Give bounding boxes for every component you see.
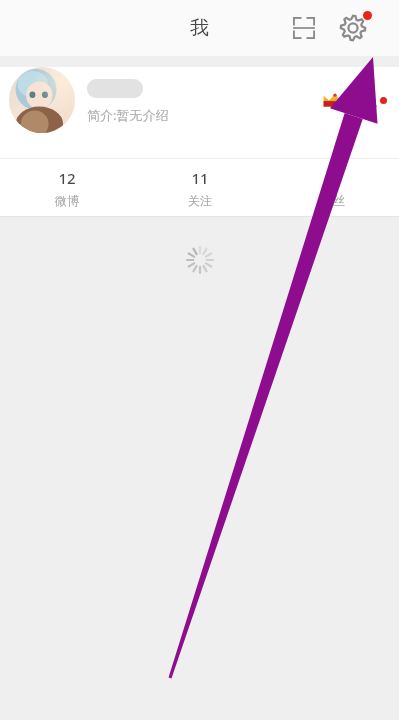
button[interactable]: 会员	[320, 89, 387, 111]
button[interactable]: 简介:暂无介绍	[0, 67, 399, 159]
staticText: 12	[58, 168, 76, 188]
staticText: 微博	[55, 193, 79, 208]
button[interactable]: 12	[0, 159, 133, 208]
button[interactable]: Scan QR code	[284, 8, 324, 48]
staticText: 11	[191, 168, 209, 188]
staticText: 会员	[351, 92, 377, 108]
staticText: 关注	[188, 193, 212, 208]
staticText: 粉丝	[321, 193, 345, 208]
staticText: 简介:暂无介绍	[87, 106, 169, 124]
button[interactable]: Settings	[333, 8, 373, 48]
staticText: 我	[190, 16, 209, 40]
button[interactable]: 11	[133, 159, 266, 208]
button[interactable]: 9	[266, 159, 399, 208]
